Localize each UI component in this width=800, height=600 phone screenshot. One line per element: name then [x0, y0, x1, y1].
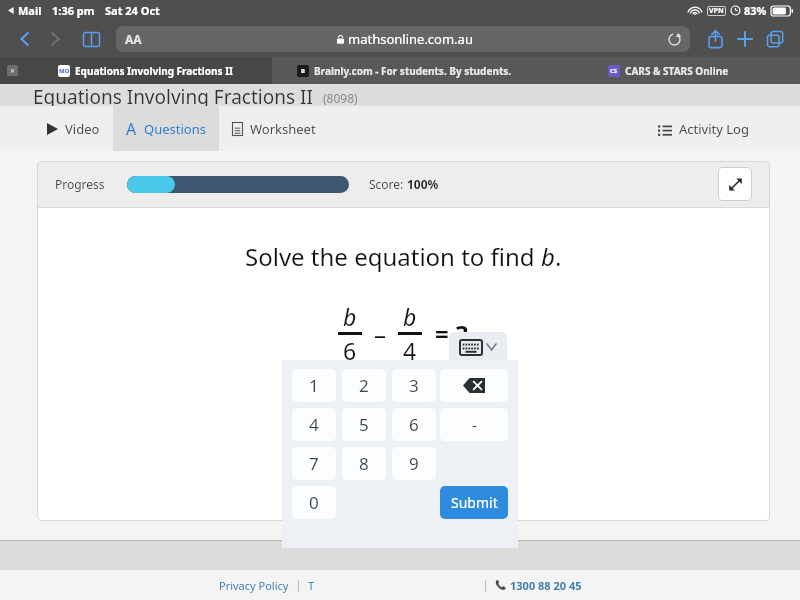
staticText: CARS & STARS Online: [625, 64, 729, 78]
staticText: =: [367, 395, 381, 428]
staticText: 1: [309, 374, 319, 397]
staticText: A: [126, 118, 137, 140]
button[interactable]: -: [440, 408, 508, 441]
staticText: 📞: [495, 580, 507, 591]
button[interactable]: Close tab: [7, 65, 18, 76]
staticText: –: [374, 317, 386, 350]
staticText: VPN: [709, 6, 724, 16]
staticText: MO: [59, 67, 70, 75]
button[interactable]: Activity Log: [652, 112, 755, 146]
staticText: Equations Involving Fractions II: [75, 64, 233, 78]
button[interactable]: Video: [33, 106, 113, 151]
button[interactable]: Show tabs: [760, 24, 790, 54]
staticText: Mail: [18, 3, 42, 18]
staticText: 7: [309, 452, 319, 475]
button[interactable]: 5: [342, 408, 386, 441]
button[interactable]: AA: [116, 26, 690, 52]
button[interactable]: Forward: [40, 24, 70, 54]
staticText: AA: [125, 31, 142, 47]
staticText: Equations Involving Fractions II: [33, 84, 313, 106]
staticText: Worksheet: [250, 120, 316, 138]
staticText: Progress: [55, 176, 105, 192]
staticText: 0: [309, 491, 319, 514]
staticText: Activity Log: [679, 120, 749, 138]
staticText: 1300 88 20 45: [510, 578, 582, 593]
staticText: b: [346, 395, 360, 428]
staticText: 3: [409, 374, 419, 397]
button[interactable]: B: [272, 57, 537, 84]
button[interactable]: Full screen: [718, 167, 752, 201]
button[interactable]: T: [308, 578, 315, 593]
button[interactable]: A: [113, 106, 219, 151]
button[interactable]: 2: [342, 369, 386, 402]
button[interactable]: 3: [392, 369, 436, 402]
button[interactable]: 0: [292, 486, 336, 519]
staticText: = 3: [435, 317, 469, 350]
staticText: 5: [359, 413, 369, 436]
staticText: 6: [343, 335, 357, 366]
button[interactable]: [393, 392, 461, 428]
staticText: 4: [403, 335, 417, 366]
button[interactable]: Share: [700, 24, 730, 54]
staticText: b: [403, 301, 417, 332]
staticText: Brainly.com - For students. By students.: [314, 64, 512, 78]
button[interactable]: Privacy Policy: [219, 578, 289, 593]
button[interactable]: 9: [392, 447, 436, 480]
staticText: 9: [409, 452, 419, 475]
button[interactable]: New tab: [730, 24, 760, 54]
staticText: Video: [65, 120, 100, 138]
staticText: Solve the equation to find: [245, 240, 541, 273]
button[interactable]: 4: [292, 408, 336, 441]
button[interactable]: Toggle keyboard: [449, 332, 507, 362]
button[interactable]: Bookmarks: [76, 24, 106, 54]
staticText: .: [555, 240, 562, 273]
staticText: -: [472, 415, 477, 435]
staticText: CS: [610, 67, 618, 75]
staticText: b: [343, 301, 357, 332]
button[interactable]: Worksheet: [219, 106, 329, 151]
button[interactable]: Back: [10, 24, 40, 54]
staticText: Questions: [144, 120, 206, 138]
staticText: 6: [409, 413, 419, 436]
button[interactable]: 8: [342, 447, 386, 480]
staticText: Score:: [369, 176, 407, 192]
staticText: (8098): [323, 90, 358, 106]
button[interactable]: 1: [292, 369, 336, 402]
staticText: 1:36 pm: [52, 3, 95, 18]
staticText: 4: [309, 413, 319, 436]
staticText: ✕: [10, 67, 16, 74]
staticText: Sat 24 Oct: [105, 3, 160, 18]
staticText: 2: [359, 374, 369, 397]
button[interactable]: Close tab: [0, 57, 272, 84]
button[interactable]: 6: [392, 408, 436, 441]
staticText: B: [301, 67, 305, 75]
button[interactable]: Backspace: [440, 369, 508, 402]
button[interactable]: CS: [537, 57, 800, 84]
staticText: 100%: [407, 176, 439, 192]
staticText: 83%: [744, 3, 767, 18]
button[interactable]: 7: [292, 447, 336, 480]
button[interactable]: Submit: [440, 486, 508, 519]
staticText: b: [541, 240, 555, 273]
staticText: Submit: [451, 493, 498, 512]
staticText: 8: [359, 452, 369, 475]
staticText: mathsonline.com.au: [348, 30, 473, 48]
